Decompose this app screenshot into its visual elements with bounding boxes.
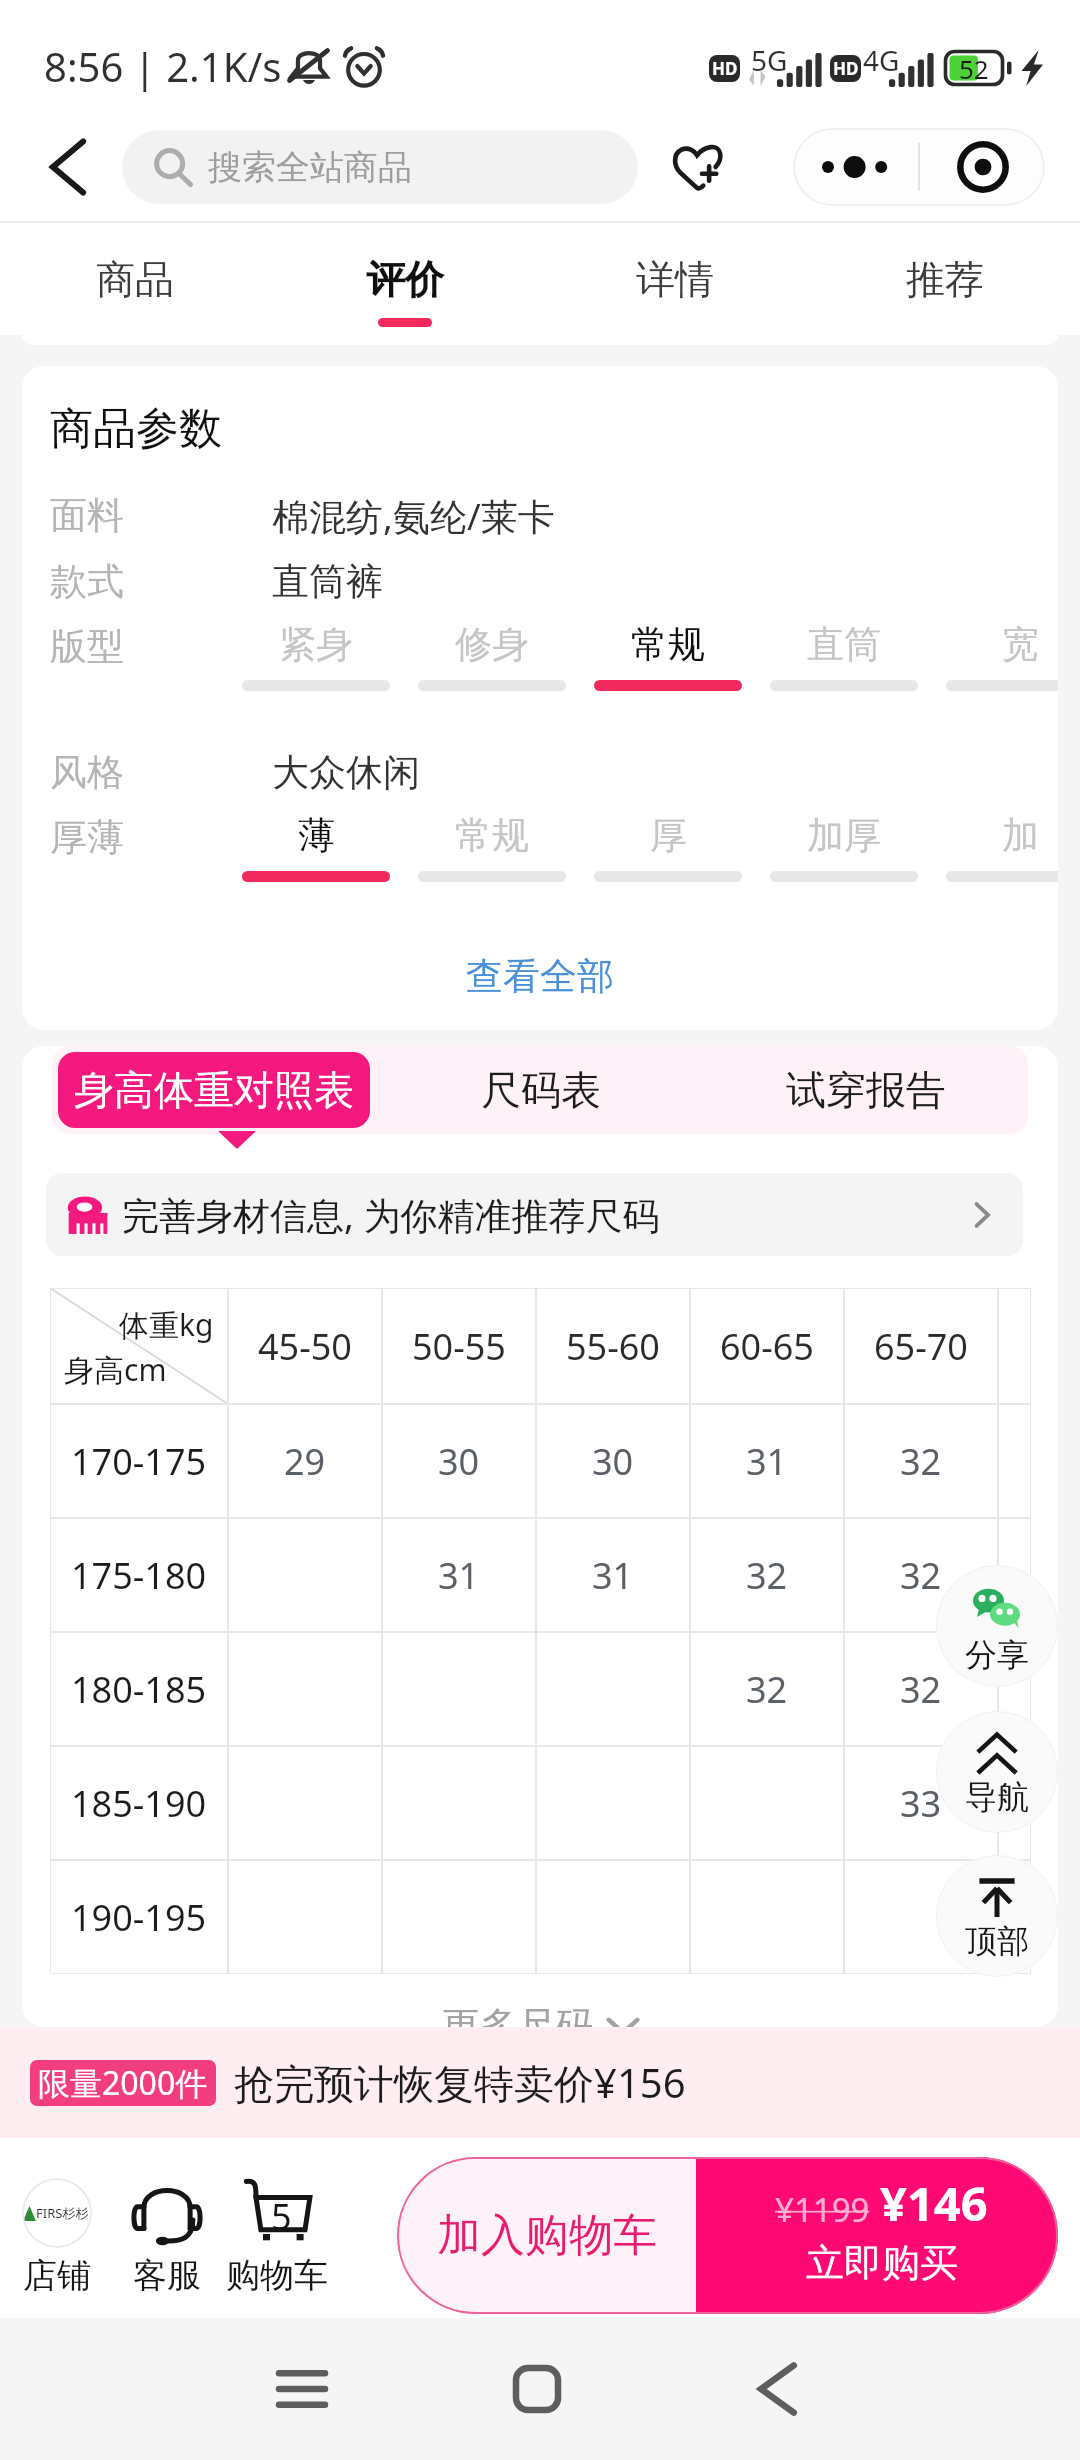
staticText: 5	[271, 2192, 292, 2241]
staticText: 身高cm	[64, 1349, 167, 1390]
button[interactable]: 搜索全站商品	[122, 130, 638, 204]
staticText: ¥146	[880, 2171, 988, 2235]
button[interactable]: 加入购物车	[397, 2157, 696, 2314]
staticText: 商品	[96, 255, 174, 304]
button[interactable]: More options	[793, 128, 918, 206]
staticText: 190-195	[71, 1893, 207, 1942]
button[interactable]: 商品	[0, 223, 270, 335]
staticText: 32	[746, 1665, 788, 1714]
button[interactable]: ¥1199	[696, 2157, 1058, 2314]
staticText: 款式	[50, 558, 272, 605]
staticText: 30	[438, 1437, 480, 1486]
staticText: 31	[746, 1437, 788, 1486]
staticText: 修身	[455, 621, 529, 668]
staticText: 加	[1002, 812, 1039, 859]
staticText: 厚薄	[50, 814, 124, 861]
button[interactable]: Recent apps	[242, 2318, 362, 2460]
staticText: 体重kg	[119, 1304, 214, 1345]
staticText: 试穿报告	[786, 1065, 946, 1115]
staticText: 32	[900, 1437, 942, 1486]
staticText: 31	[438, 1551, 480, 1600]
button[interactable]: 评价	[270, 223, 540, 335]
button[interactable]: 紧身	[228, 621, 404, 691]
staticText: 导航	[965, 1777, 1029, 1817]
button[interactable]: 加厚	[756, 812, 932, 882]
staticText: 65-70	[874, 1322, 968, 1371]
staticText: 33	[900, 1779, 942, 1828]
button[interactable]: 试穿报告	[703, 1046, 1028, 1134]
button[interactable]: Favorite	[662, 127, 742, 207]
button[interactable]: 薄	[228, 812, 404, 882]
staticText: 风格	[50, 749, 272, 796]
staticText: 版型	[50, 623, 124, 670]
staticText: 32	[746, 1551, 788, 1600]
staticText: 薄	[298, 812, 335, 859]
staticText: 52	[959, 51, 989, 86]
staticText: 抢完预计恢复特卖价¥156	[234, 2055, 686, 2110]
staticText: 31	[592, 1551, 634, 1600]
staticText: 直筒裤	[272, 558, 383, 605]
button[interactable]: 查看全部	[440, 941, 640, 1012]
button[interactable]: 尺码表	[378, 1046, 703, 1134]
staticText: 55-60	[566, 1322, 660, 1371]
button[interactable]: 常规	[580, 621, 756, 691]
button[interactable]: FIRS杉杉	[2, 2178, 112, 2297]
button[interactable]: 导航	[936, 1711, 1058, 1833]
button[interactable]: 详情	[540, 223, 810, 335]
staticText: HD	[833, 57, 859, 80]
staticText: 直筒	[807, 621, 881, 668]
staticText: 厚	[650, 812, 687, 859]
staticText: FIRS杉杉	[36, 2204, 89, 2222]
staticText: 完善身材信息, 为你精准推荐尺码	[122, 1189, 660, 1240]
staticText: 紧身	[279, 621, 353, 668]
staticText: 加厚	[807, 812, 881, 859]
button[interactable]: Back	[717, 2318, 837, 2460]
button[interactable]: 加	[932, 812, 1058, 882]
button[interactable]: 更多尺码	[50, 1990, 1031, 2027]
staticText: 搜索全站商品	[208, 146, 412, 189]
staticText: 宽	[1002, 621, 1039, 668]
staticText: 详情	[636, 255, 714, 304]
button[interactable]: 身高体重对照表	[52, 1046, 378, 1134]
staticText: 4G	[863, 41, 900, 79]
staticText: 更多尺码	[442, 2002, 594, 2027]
staticText: 45-50	[258, 1322, 352, 1371]
staticText: 50-55	[412, 1322, 506, 1371]
button[interactable]: Home	[477, 2318, 597, 2460]
staticText: 立即购买	[806, 2239, 958, 2287]
button[interactable]: 宽	[932, 621, 1058, 691]
staticText: ¥1199	[775, 2187, 870, 2232]
button[interactable]: 客服	[112, 2178, 222, 2297]
button[interactable]: Back	[30, 129, 106, 205]
button[interactable]: 常规	[404, 812, 580, 882]
button[interactable]: 5	[222, 2178, 332, 2297]
staticText: 加入购物车	[437, 2208, 657, 2263]
staticText: 大众休闲	[272, 749, 420, 796]
staticText: HD	[712, 57, 738, 80]
staticText: 商品参数	[50, 402, 222, 456]
staticText: 170-175	[71, 1437, 207, 1486]
staticText: 棉混纺,氨纶/莱卡	[272, 490, 555, 541]
staticText: 175-180	[71, 1551, 207, 1600]
button[interactable]: 分享	[936, 1565, 1058, 1687]
button[interactable]: 完善身材信息, 为你精准推荐尺码	[46, 1173, 1023, 1256]
staticText: 身高体重对照表	[74, 1065, 354, 1115]
staticText: 180-185	[71, 1665, 207, 1714]
staticText: 客服	[133, 2254, 201, 2297]
staticText: 30	[592, 1437, 634, 1486]
staticText: 185-190	[71, 1779, 207, 1828]
staticText: 查看全部	[466, 953, 614, 1000]
button[interactable]: Close mini program	[920, 128, 1045, 206]
staticText: 店铺	[23, 2254, 91, 2297]
staticText: 32	[900, 1551, 942, 1600]
button[interactable]: 直筒	[756, 621, 932, 691]
staticText: 面料	[50, 492, 272, 539]
staticText: 32	[900, 1665, 942, 1714]
button[interactable]: 厚	[580, 812, 756, 882]
staticText: 尺码表	[481, 1065, 601, 1115]
button[interactable]: 修身	[404, 621, 580, 691]
staticText: 60-65	[720, 1322, 814, 1371]
button[interactable]: 顶部	[936, 1855, 1058, 1977]
staticText: 29	[284, 1437, 326, 1486]
button[interactable]: 推荐	[810, 223, 1080, 335]
